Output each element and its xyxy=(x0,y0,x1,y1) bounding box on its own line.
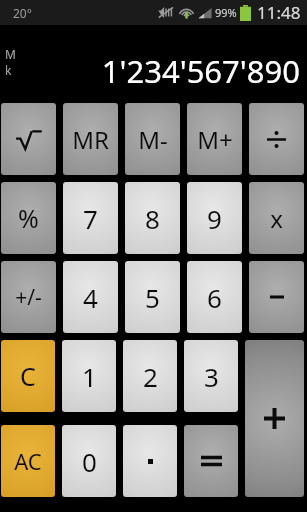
button[interactable]: % xyxy=(1,182,56,254)
button[interactable]: Minus xyxy=(249,261,304,333)
staticText: 1 xyxy=(82,359,97,394)
button[interactable]: C xyxy=(1,340,55,412)
staticText: 0 xyxy=(82,444,97,479)
staticText: % xyxy=(18,201,39,235)
staticText: k xyxy=(5,62,12,78)
button[interactable]: 3 xyxy=(184,340,238,412)
button[interactable]: AC xyxy=(1,425,55,497)
button[interactable]: 9 xyxy=(187,182,242,254)
button[interactable]: 5 xyxy=(125,261,180,333)
button[interactable]: Square root xyxy=(1,103,56,175)
staticText: 3 xyxy=(204,359,219,394)
button[interactable]: MR xyxy=(63,103,118,175)
button[interactable]: Decimal point xyxy=(123,425,177,497)
staticText: +/- xyxy=(15,283,42,312)
staticText: 4 xyxy=(83,280,98,315)
button[interactable]: 1 xyxy=(62,340,116,412)
button[interactable]: 6 xyxy=(187,261,242,333)
button[interactable]: Plus xyxy=(245,340,304,497)
button[interactable]: M+ xyxy=(187,103,242,175)
staticText: 9 xyxy=(207,201,222,236)
staticText: M xyxy=(5,46,16,62)
button[interactable]: x xyxy=(249,182,304,254)
button[interactable]: 0 xyxy=(62,425,116,497)
staticText: 20° xyxy=(13,5,32,21)
staticText: 7 xyxy=(83,201,98,236)
button[interactable]: Equals xyxy=(184,425,238,497)
staticText: 8 xyxy=(145,201,160,236)
button[interactable]: +/- xyxy=(1,261,56,333)
staticText: AC xyxy=(14,446,42,476)
staticText: 6 xyxy=(207,280,222,315)
staticText: 5 xyxy=(145,280,160,315)
staticText: 11:48 xyxy=(257,1,301,24)
staticText: 2 xyxy=(143,359,158,394)
staticText: MR xyxy=(72,123,109,156)
staticText: C xyxy=(20,359,36,393)
button[interactable]: 2 xyxy=(123,340,177,412)
button[interactable]: Divide xyxy=(249,103,304,175)
staticText: x xyxy=(270,202,283,235)
button[interactable]: 7 xyxy=(63,182,118,254)
staticText: 99% xyxy=(215,5,237,20)
staticText: 1'234'567'890 xyxy=(101,50,300,92)
button[interactable]: 4 xyxy=(63,261,118,333)
staticText: M+ xyxy=(197,123,233,156)
button[interactable]: M- xyxy=(125,103,180,175)
button[interactable]: 8 xyxy=(125,182,180,254)
staticText: M- xyxy=(138,123,168,156)
